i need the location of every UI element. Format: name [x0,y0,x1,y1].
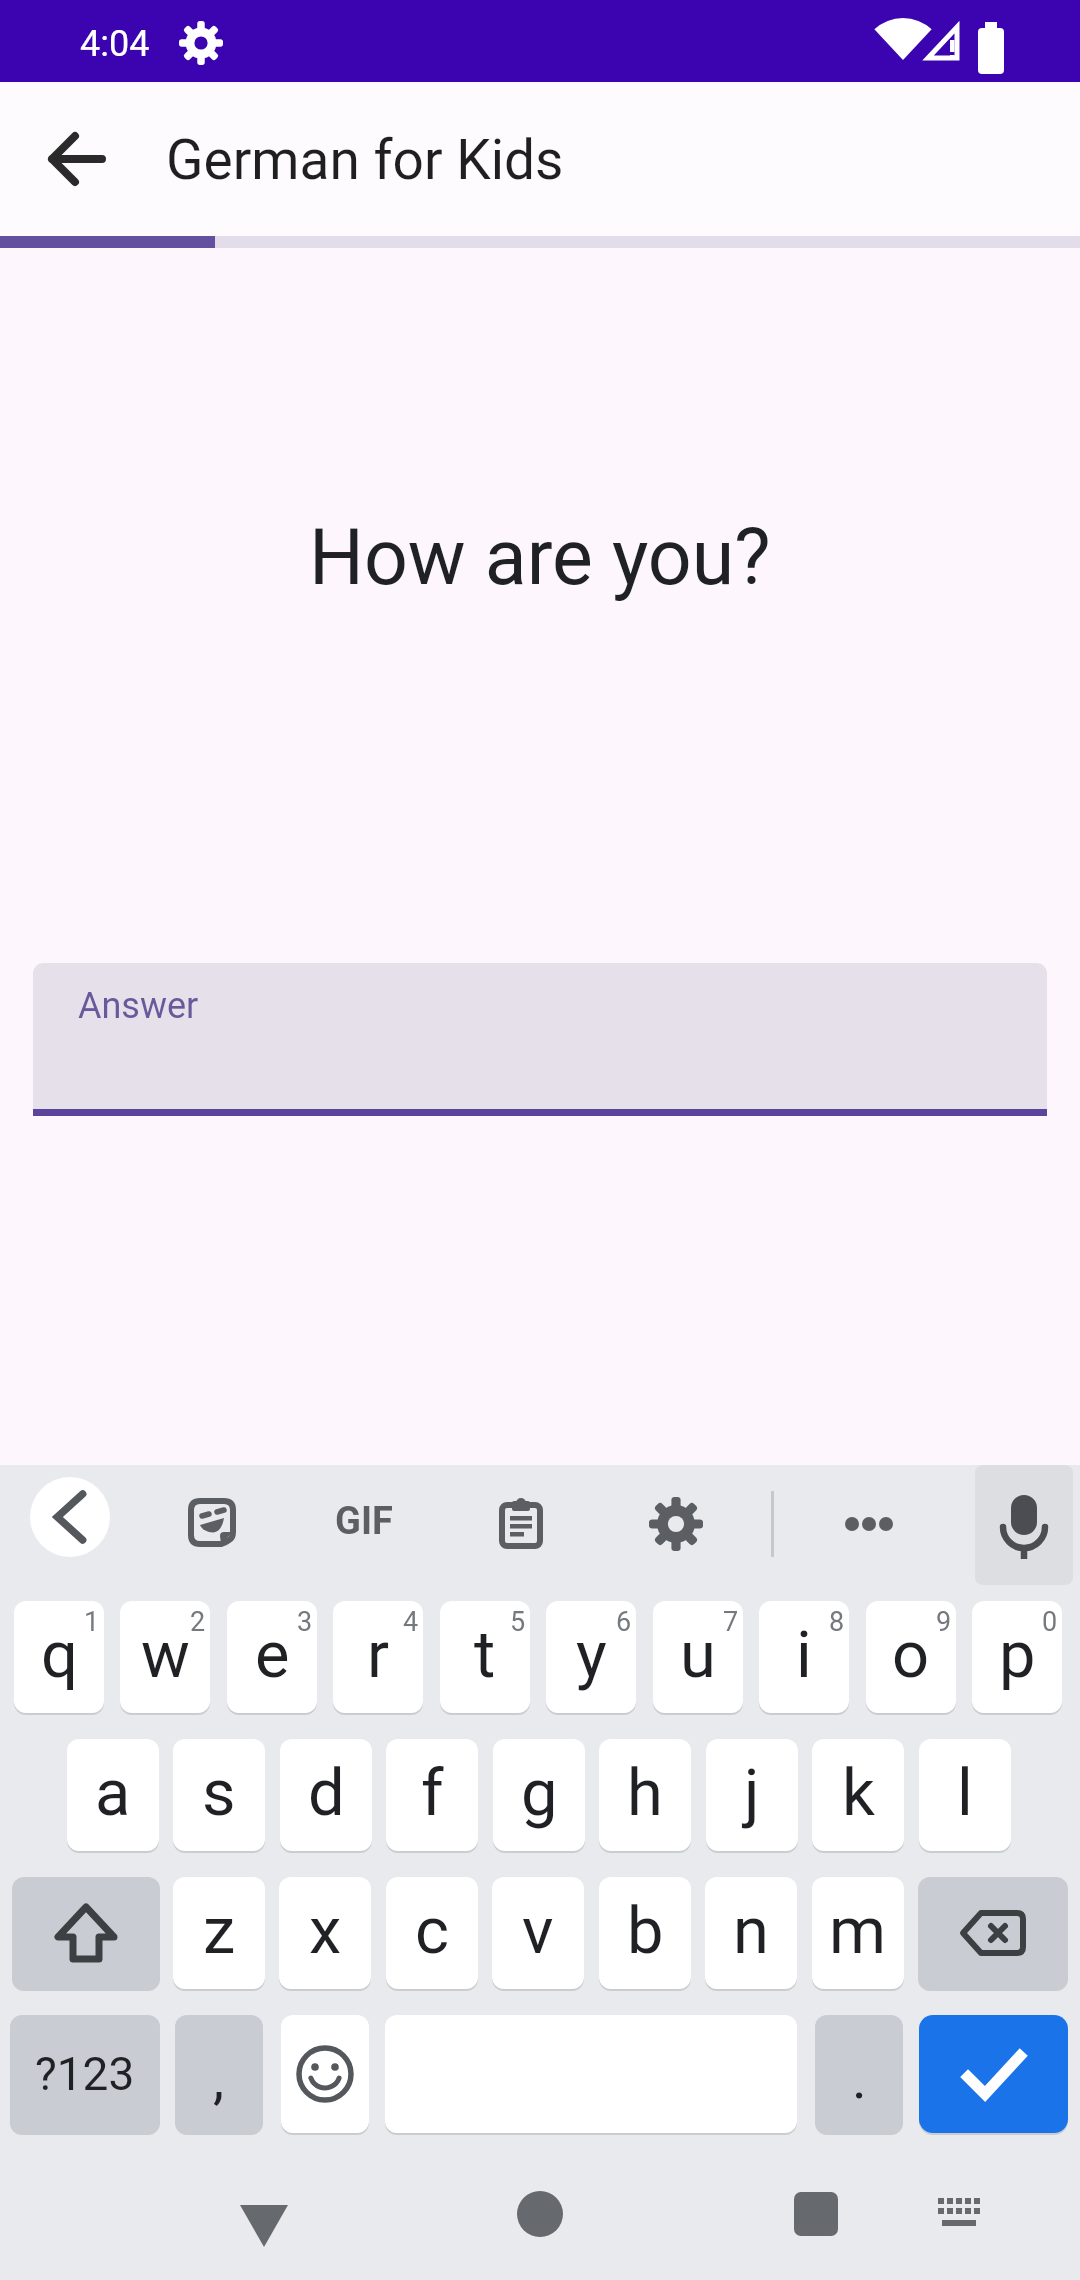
staticText: f [421,1755,444,1831]
button[interactable]: z [173,1877,265,1989]
staticText: d [308,1755,345,1831]
button[interactable]: u [653,1601,743,1713]
staticText: 2 [190,1606,206,1638]
staticText: n [733,1893,769,1969]
staticText: 1 [84,1606,100,1638]
staticText: r [367,1617,390,1693]
button[interactable]: x [279,1877,371,1989]
button[interactable]: p [972,1601,1062,1713]
button[interactable] [768,2175,864,2271]
staticText: e [255,1617,290,1693]
staticText: b [627,1893,664,1969]
button[interactable]: a [67,1739,159,1851]
staticText: 6 [616,1606,632,1638]
staticText: m [829,1893,887,1969]
button[interactable] [644,1492,708,1556]
staticText: z [203,1893,236,1969]
button[interactable]: y [546,1601,636,1713]
button[interactable] [492,2175,588,2271]
button[interactable]: g [493,1739,585,1851]
staticText: s [202,1755,236,1831]
button[interactable]: ?123 [10,2015,160,2133]
staticText: 9 [936,1606,952,1638]
button[interactable]: t [440,1601,530,1713]
staticText: ?123 [35,2047,135,2101]
button[interactable] [975,1465,1073,1585]
staticText: t [474,1617,496,1693]
staticText: h [627,1755,663,1831]
staticText: 4:04 [80,23,150,65]
button[interactable] [30,1477,110,1557]
staticText: 3 [297,1606,313,1638]
staticText: , [213,2046,225,2112]
button[interactable]: k [812,1739,904,1851]
button[interactable]: r [333,1601,423,1713]
button[interactable]: o [866,1601,956,1713]
staticText: c [415,1893,450,1969]
staticText: y [576,1617,607,1693]
staticText: o [892,1617,930,1693]
staticText: p [999,1617,1036,1693]
staticText: GIF [335,1499,393,1544]
staticText: 4 [403,1606,419,1638]
staticText: k [842,1755,875,1831]
button[interactable] [912,2180,1008,2260]
button[interactable] [499,1500,543,1548]
button[interactable]: m [812,1877,904,1989]
button[interactable]: i [759,1601,849,1713]
staticText: German for Kids [166,128,564,192]
button[interactable]: GIF [322,1490,406,1552]
staticText: a [95,1755,131,1831]
staticText: u [680,1617,716,1693]
staticText: 7 [723,1606,739,1638]
staticText: j [744,1755,760,1831]
button[interactable]: v [492,1877,584,1989]
button[interactable]: s [173,1739,265,1851]
staticText: q [41,1617,78,1693]
button[interactable] [830,1492,906,1556]
button[interactable]: e [227,1601,317,1713]
button[interactable]: j [706,1739,798,1851]
button[interactable]: b [599,1877,691,1989]
button[interactable]: w [120,1601,210,1713]
staticText: l [957,1755,973,1831]
button[interactable] [12,1877,160,1989]
button[interactable] [919,2015,1068,2133]
staticText: How are you? [309,513,771,603]
button[interactable]: h [599,1739,691,1851]
button[interactable]: d [280,1739,372,1851]
button[interactable]: c [386,1877,478,1989]
staticText: i [796,1617,812,1693]
button[interactable]: q [14,1601,104,1713]
staticText: Answer [78,985,199,1027]
button[interactable] [281,2015,369,2133]
button[interactable] [188,1498,236,1548]
button[interactable]: f [386,1739,478,1851]
staticText: 0 [1042,1606,1058,1638]
staticText: w [141,1617,190,1693]
button[interactable]: , [175,2015,263,2133]
button[interactable] [216,2175,312,2271]
staticText: g [521,1755,558,1831]
button[interactable] [28,111,124,207]
staticText: . [852,2046,867,2112]
button[interactable] [918,1877,1068,1989]
staticText: x [309,1893,342,1969]
staticText: 5 [510,1606,526,1638]
button[interactable]: n [705,1877,797,1989]
button[interactable]: l [919,1739,1011,1851]
button[interactable]: Answer [33,963,1047,1109]
staticText: v [522,1893,554,1969]
staticText: 8 [829,1606,845,1638]
button[interactable]: . [815,2015,903,2133]
